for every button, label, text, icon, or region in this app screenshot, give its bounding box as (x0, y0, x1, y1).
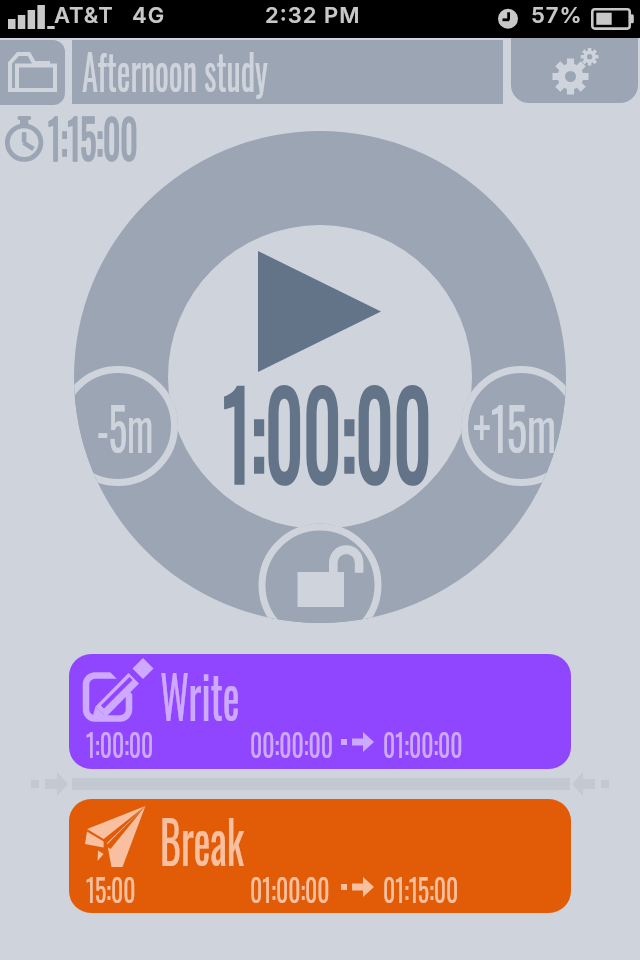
staticText: 00:00:00 (250, 719, 333, 768)
button[interactable]: Write (69, 654, 571, 769)
button[interactable]: Unlock (260, 525, 380, 645)
staticText: 2:32 PM (265, 2, 361, 29)
staticText: Afternoon study (82, 32, 268, 106)
staticText: +15m (473, 381, 556, 470)
button[interactable]: Break (69, 799, 571, 913)
staticText: 4G (132, 2, 166, 29)
button[interactable]: Projects (0, 40, 65, 105)
staticText: 01:00:00 (250, 864, 330, 913)
staticText: Break (160, 799, 244, 883)
button[interactable]: Minus 5 minutes (58, 366, 178, 486)
staticText: 57% (531, 2, 583, 29)
staticText: 1:15:00 (48, 95, 138, 177)
staticText: 01:15:00 (383, 864, 459, 913)
staticText: 01:00:00 (383, 719, 463, 768)
staticText: -5m (97, 381, 153, 470)
staticText: Write (160, 654, 240, 738)
staticText: 15:00 (86, 864, 136, 913)
staticText: 1:00:00 (86, 719, 154, 768)
staticText: AT&T (54, 2, 114, 29)
staticText: 1:00:00 (223, 342, 432, 517)
button[interactable]: Plus 15 minutes (461, 366, 581, 486)
button[interactable] (72, 40, 503, 104)
button[interactable]: Settings (511, 38, 638, 103)
